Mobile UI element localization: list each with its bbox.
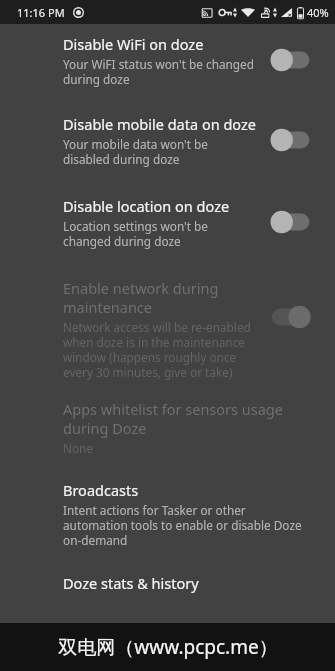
button[interactable]: Disable mobile data on doze — [0, 110, 335, 192]
staticText: Your WiFI status won't be changed during… — [63, 56, 255, 88]
button[interactable]: Disable location on doze — [0, 192, 335, 276]
button[interactable]: Toggle Disable WiFi on doze — [269, 46, 317, 74]
staticText: Disable location on doze — [63, 196, 230, 216]
staticText: Enable network during maintenance — [63, 278, 219, 317]
staticText: Your mobile data won't be disabled durin… — [63, 136, 208, 168]
staticText: Location settings won't be changed durin… — [63, 218, 208, 250]
staticText: Intent actions for Tasker or other autom… — [63, 502, 302, 549]
button[interactable]: Disable WiFi on doze — [0, 24, 335, 110]
staticText: Doze stats & history — [63, 573, 199, 593]
button[interactable]: Toggle Enable network during maintenance — [269, 303, 317, 331]
staticText: Disable WiFi on doze — [63, 34, 204, 54]
staticText: Network access will be re-enabled when d… — [63, 319, 251, 381]
button[interactable]: Broadcasts — [0, 478, 335, 571]
staticText: 40% — [307, 5, 329, 20]
staticText: Apps whitelist for sensors usage during … — [63, 399, 283, 438]
button[interactable]: Doze stats & history — [0, 571, 335, 603]
button[interactable]: Toggle Disable mobile data on doze — [269, 126, 317, 154]
button[interactable]: Enable network during maintenance — [0, 276, 335, 397]
staticText: Disable mobile data on doze — [63, 114, 256, 134]
staticText: None — [63, 440, 94, 456]
staticText: 双电网（www.pcpc.me） — [58, 634, 278, 660]
staticText: Broadcasts — [63, 480, 139, 500]
button[interactable]: Toggle Disable location on doze — [269, 208, 317, 236]
button[interactable]: Apps whitelist for sensors usage during … — [0, 397, 335, 478]
staticText: 11:16 PM — [17, 5, 65, 20]
